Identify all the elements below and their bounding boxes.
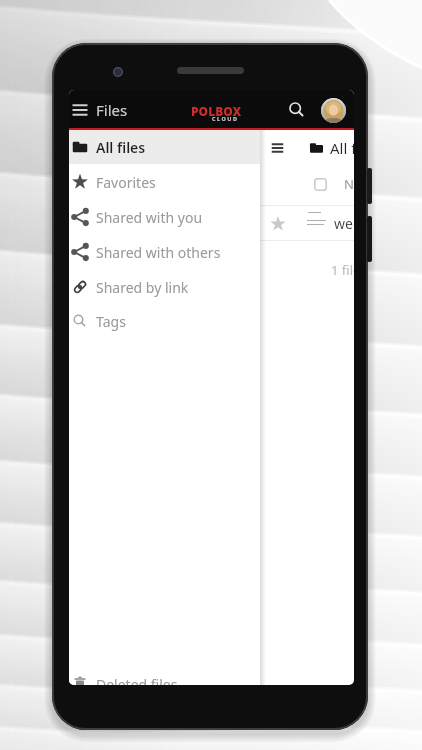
staticText: POLBOX bbox=[191, 103, 242, 116]
staticText: CLOUD bbox=[212, 115, 239, 122]
staticText: 1 file, 492 KB bbox=[331, 261, 354, 279]
button[interactable]: Tags bbox=[69, 304, 260, 338]
button[interactable] bbox=[321, 98, 346, 123]
button[interactable]: Deleted files bbox=[69, 667, 260, 685]
staticText: Favorites bbox=[96, 173, 156, 192]
button[interactable] bbox=[70, 95, 92, 123]
staticText: Shared with others bbox=[96, 243, 221, 262]
staticText: Shared with you bbox=[96, 208, 203, 227]
staticText: Shared by link bbox=[96, 278, 189, 297]
button[interactable]: Shared by link bbox=[69, 270, 260, 304]
button[interactable] bbox=[260, 206, 354, 241]
staticText: Tags bbox=[96, 312, 126, 331]
button[interactable]: Favorites bbox=[69, 165, 260, 199]
staticText: Files bbox=[96, 100, 128, 120]
staticText: All files bbox=[96, 138, 146, 157]
button[interactable]: Shared with others bbox=[69, 235, 260, 269]
staticText: Name bbox=[344, 175, 354, 193]
button[interactable]: All files bbox=[69, 130, 260, 164]
staticText: welcome.txt bbox=[334, 214, 354, 233]
button[interactable]: Shared with you bbox=[69, 200, 260, 234]
staticText: All files bbox=[330, 138, 354, 158]
button[interactable] bbox=[265, 134, 291, 162]
staticText: Deleted files bbox=[96, 675, 178, 685]
button[interactable] bbox=[284, 97, 310, 123]
